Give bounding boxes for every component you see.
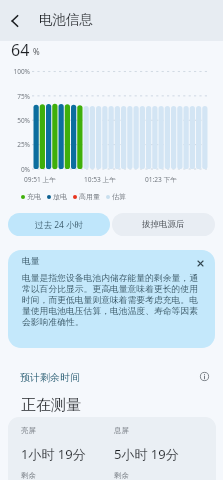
staticText: 亮屏 [21, 426, 36, 435]
staticText: 0% [5, 165, 30, 174]
staticText: 电量 [22, 256, 40, 267]
button[interactable]: 拔掉电源后 [112, 213, 215, 236]
staticText: % [33, 46, 40, 57]
staticText: 75% [5, 92, 30, 101]
button[interactable]: 过去 24 小时 [8, 213, 110, 236]
button[interactable]: Info [196, 368, 212, 384]
staticText: 息屏 [114, 426, 129, 435]
staticText: 充电 [27, 192, 41, 201]
staticText: 正在测量 [21, 396, 81, 415]
staticText: 1小时 19分 [21, 445, 86, 463]
staticText: 电池信息 [39, 11, 93, 28]
staticText: 过去 24 小时 [35, 219, 84, 231]
staticText: 电量是指您设备电池内储存能量的剩余量，通 常以百分比显示。更高电量意味着更长的使… [22, 273, 208, 328]
staticText: 01:23 下午 [145, 175, 177, 184]
staticText: 50% [5, 116, 30, 125]
staticText: 09:51 上午 [24, 175, 56, 184]
staticText: 剩余 [114, 471, 129, 480]
staticText: 64 [11, 39, 30, 61]
staticText: 100% [5, 67, 30, 76]
staticText: 25% [5, 140, 30, 149]
staticText: 高用量 [79, 192, 100, 201]
staticText: 10:53 上午 [84, 175, 116, 184]
staticText: 估算 [112, 192, 126, 201]
button[interactable]: Close [190, 253, 210, 273]
staticText: 剩余 [21, 471, 36, 480]
staticText: 预计剩余时间 [20, 371, 80, 384]
staticText: 放电 [53, 192, 67, 201]
staticText: 拔掉电源后 [142, 219, 185, 230]
button[interactable]: Back [1, 7, 29, 35]
staticText: 5小时 19分 [114, 445, 179, 463]
